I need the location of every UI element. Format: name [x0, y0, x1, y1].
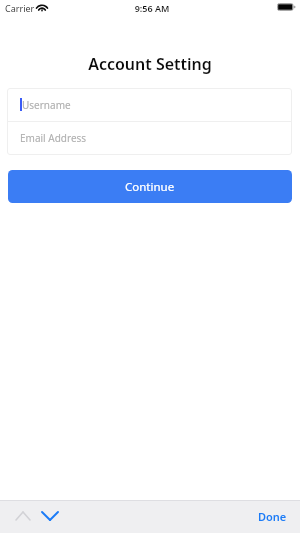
button[interactable]: Username	[7, 88, 292, 121]
button[interactable]: Done	[249, 503, 296, 530]
staticText: Account Setting	[0, 53, 300, 75]
button[interactable]: Email Address	[7, 122, 292, 155]
button[interactable]: Next field	[33, 501, 66, 531]
button[interactable]: Continue	[8, 170, 292, 203]
staticText: Done	[258, 509, 287, 524]
staticText: Carrier	[5, 2, 35, 14]
staticText: Continue	[125, 179, 175, 195]
staticText: Username	[22, 98, 71, 112]
staticText: 9:56 AM	[2, 2, 300, 14]
staticText: Email Address	[20, 131, 87, 145]
button[interactable]: Previous field	[6, 501, 39, 531]
